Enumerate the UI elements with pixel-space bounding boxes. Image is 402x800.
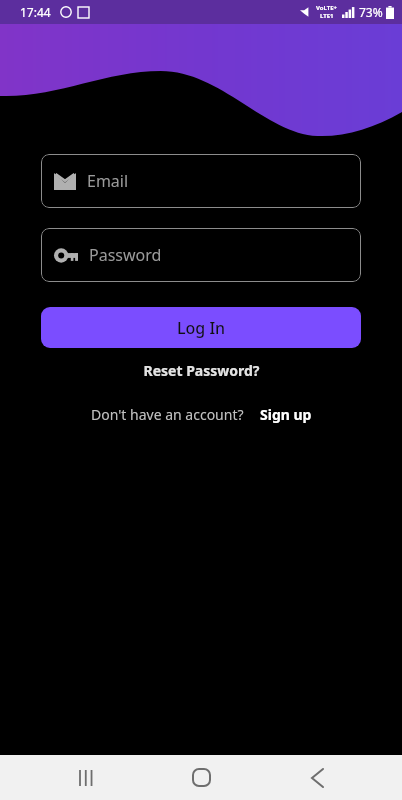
staticText: LTE1 bbox=[320, 12, 334, 20]
staticText: VoLTE+ bbox=[316, 4, 338, 12]
staticText: 73% bbox=[359, 4, 383, 20]
staticText: Sign up bbox=[260, 405, 312, 424]
staticText: 17:44 bbox=[20, 4, 51, 20]
staticText: Password bbox=[89, 244, 162, 266]
button[interactable]: Log In bbox=[41, 307, 361, 348]
staticText: Don't have an account? bbox=[91, 405, 244, 424]
button[interactable]: Home bbox=[171, 755, 231, 800]
button[interactable]: Back bbox=[287, 755, 347, 800]
button[interactable]: Reset Password? bbox=[137, 356, 266, 385]
staticText: Log In bbox=[177, 317, 226, 339]
button[interactable]: Sign up bbox=[260, 405, 312, 424]
button[interactable]: Email bbox=[41, 154, 361, 208]
button[interactable]: Recent apps bbox=[56, 755, 116, 800]
staticText: Reset Password? bbox=[143, 361, 260, 380]
button[interactable]: Password bbox=[41, 228, 361, 282]
staticText: Email bbox=[87, 170, 129, 192]
